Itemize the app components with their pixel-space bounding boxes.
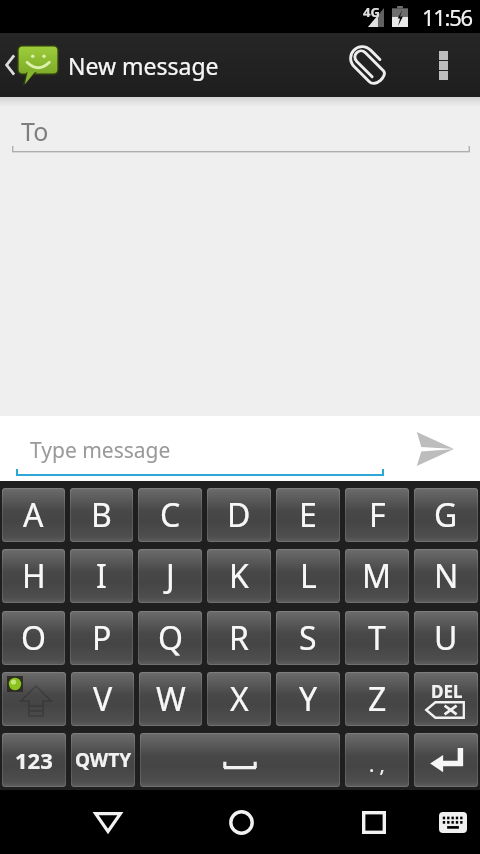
button[interactable]: Space — [140, 733, 340, 787]
staticText: L — [300, 554, 317, 598]
button[interactable]: Home — [207, 790, 275, 854]
staticText: . , — [369, 751, 385, 778]
staticText: E — [299, 493, 317, 537]
button[interactable]: QWTY — [71, 733, 135, 787]
button[interactable]: R — [207, 611, 271, 665]
button[interactable]: B — [70, 488, 133, 542]
button[interactable]: S — [276, 611, 340, 665]
staticText: H — [22, 554, 46, 598]
staticText: QWTY — [75, 747, 132, 773]
staticText: 11:56 — [422, 2, 472, 32]
staticText: B — [91, 493, 112, 537]
staticText: 123 — [15, 745, 53, 775]
button[interactable]: To — [0, 97, 480, 157]
staticText: A — [23, 493, 44, 537]
button[interactable]: M — [345, 549, 409, 603]
staticText: Y — [299, 677, 318, 721]
button[interactable]: Q — [138, 611, 202, 665]
staticText: K — [229, 554, 249, 598]
button[interactable]: D — [207, 488, 271, 542]
button[interactable]: X — [207, 672, 271, 726]
button[interactable]: Send — [390, 416, 480, 481]
button[interactable]: N — [414, 549, 478, 603]
staticText: R — [229, 616, 249, 660]
staticText: 4G — [363, 3, 380, 21]
staticText: DEL — [431, 680, 463, 703]
staticText: W — [156, 677, 186, 721]
staticText: U — [434, 616, 458, 660]
button[interactable]: Enter — [414, 733, 478, 787]
staticText: I — [96, 554, 107, 598]
staticText: C — [160, 493, 181, 537]
staticText: Type message — [30, 436, 171, 465]
button[interactable]: T — [345, 611, 409, 665]
button[interactable]: K — [207, 549, 271, 603]
button[interactable]: Y — [276, 672, 340, 726]
button[interactable]: G — [414, 488, 478, 542]
button[interactable]: . , — [345, 733, 409, 787]
button[interactable]: J — [138, 549, 202, 603]
button[interactable]: Back — [74, 790, 142, 854]
button[interactable]: F — [345, 488, 409, 542]
button[interactable]: Delete — [414, 672, 478, 726]
staticText: To — [21, 114, 49, 148]
button[interactable]: More options — [412, 33, 474, 97]
staticText: Q — [158, 616, 183, 660]
button[interactable]: Recent apps — [340, 790, 408, 854]
button[interactable]: C — [138, 488, 202, 542]
staticText: D — [227, 493, 251, 537]
staticText: G — [434, 493, 458, 537]
button[interactable]: O — [2, 611, 65, 665]
staticText: J — [166, 554, 175, 598]
button[interactable]: A — [2, 488, 65, 542]
button[interactable]: Z — [345, 672, 409, 726]
staticText: S — [299, 616, 317, 660]
button[interactable]: Type message — [0, 416, 390, 481]
staticText: T — [368, 616, 386, 660]
button[interactable]: Shift — [2, 672, 66, 726]
button[interactable]: U — [414, 611, 478, 665]
button[interactable]: Attach — [334, 33, 404, 97]
staticText: M — [362, 554, 392, 598]
staticText: Z — [368, 677, 387, 721]
button[interactable]: W — [139, 672, 202, 726]
staticText: V — [93, 677, 113, 721]
button[interactable]: Change keyboard — [421, 790, 480, 854]
staticText: X — [230, 677, 249, 721]
button[interactable]: V — [71, 672, 134, 726]
button[interactable]: H — [2, 549, 65, 603]
staticText: F — [369, 493, 386, 537]
staticText: New message — [68, 50, 219, 81]
button[interactable]: L — [276, 549, 340, 603]
button[interactable]: P — [70, 611, 133, 665]
button[interactable]: 123 — [2, 733, 66, 787]
staticText: N — [434, 554, 459, 598]
staticText: P — [92, 616, 112, 660]
button[interactable]: Navigate up — [0, 33, 59, 97]
button[interactable]: E — [276, 488, 340, 542]
staticText: O — [21, 616, 46, 660]
button[interactable]: I — [70, 549, 133, 603]
